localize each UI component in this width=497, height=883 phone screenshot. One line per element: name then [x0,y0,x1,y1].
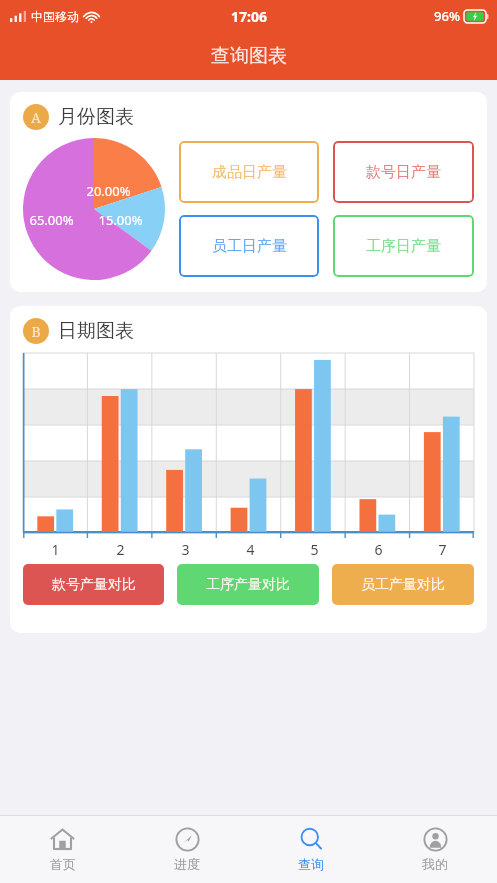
staticText: 4 [246,540,255,559]
staticText: 员工产量对比 [361,576,445,594]
staticText: 96% [434,7,460,25]
staticText: 中国移动 [31,9,79,24]
staticText: 我的 [422,856,448,872]
other: 首页 [50,827,75,852]
staticText: 2 [116,540,125,559]
button[interactable]: 款号日产量 [333,141,474,203]
staticText: 款号日产量 [366,163,441,182]
staticText: 17:06 [231,7,267,26]
button[interactable]: 员工日产量 [179,215,319,277]
staticText: 3 [181,540,190,559]
button[interactable]: 成品日产量 [179,141,319,203]
button[interactable]: 员工产量对比 [332,564,474,605]
button[interactable]: 进度 [125,816,249,883]
button[interactable]: 工序产量对比 [177,564,319,605]
other: 我的 [423,827,448,852]
staticText: 成品日产量 [212,163,287,182]
button[interactable]: 查询 [249,816,373,883]
staticText: 5 [310,540,319,559]
staticText: 员工日产量 [212,237,287,256]
button[interactable]: 工序日产量 [333,215,474,277]
staticText: 15.00% [98,211,143,229]
button[interactable]: 首页 [0,816,125,883]
staticText: 20.00% [86,182,131,200]
other: 进度 [175,827,200,852]
staticText: 进度 [174,856,200,872]
staticText: B [31,322,41,341]
staticText: 款号产量对比 [52,576,136,594]
staticText: 1 [51,540,60,559]
staticText: 7 [438,540,447,559]
other: 查询 [299,827,324,852]
staticText: 查询图表 [211,44,287,68]
staticText: 工序日产量 [366,237,441,256]
staticText: 首页 [50,856,76,872]
staticText: 月份图表 [58,105,134,129]
staticText: 6 [374,540,383,559]
staticText: 工序产量对比 [206,576,290,594]
button[interactable]: 我的 [373,816,497,883]
button[interactable]: 款号产量对比 [23,564,164,605]
staticText: 日期图表 [58,319,134,343]
staticText: 查询 [298,856,324,872]
staticText: A [31,108,41,127]
staticText: 65.00% [29,211,74,229]
